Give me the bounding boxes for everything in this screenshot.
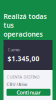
staticText: CBU / Alias bbox=[6, 81, 27, 87]
staticText: Cuenta bbox=[7, 47, 19, 52]
staticText: tus operaciones bbox=[3, 21, 42, 39]
button[interactable]: Continuar bbox=[6, 89, 50, 96]
staticText: desde tu celular bbox=[3, 39, 31, 56]
staticText: $1.345,00 bbox=[7, 54, 39, 63]
staticText: Continuar bbox=[16, 89, 40, 96]
staticText: Realizá todas bbox=[3, 12, 46, 21]
staticText: CUENTA DESTINO bbox=[6, 74, 39, 79]
